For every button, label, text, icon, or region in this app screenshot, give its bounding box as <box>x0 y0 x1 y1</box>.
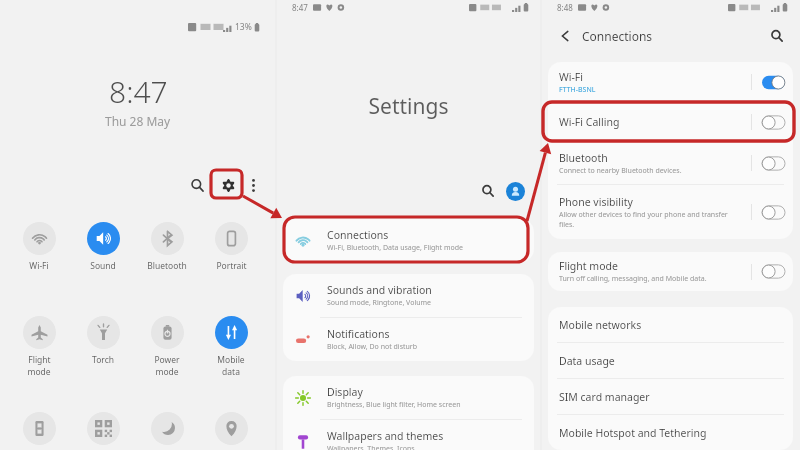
button[interactable]: Search <box>477 180 499 202</box>
staticText: Flight <box>28 354 51 366</box>
staticText: Settings <box>276 92 541 121</box>
button[interactable]: Notifications <box>283 318 534 361</box>
button[interactable]: Portrait <box>203 222 259 272</box>
staticText: Wi-Fi <box>29 260 49 272</box>
staticText: 13% <box>235 21 252 33</box>
button[interactable]: More options <box>245 174 261 196</box>
button[interactable]: Phone visibility <box>548 185 793 239</box>
button[interactable] <box>11 412 67 445</box>
staticText: Block, Allow, Do not disturb <box>327 342 418 352</box>
button[interactable]: Toggle Phone visibility <box>757 204 785 221</box>
staticText: Wi-Fi, Bluetooth, Data usage, Flight mod… <box>327 243 464 253</box>
staticText: Mobile <box>217 354 245 366</box>
staticText: Power <box>154 354 180 366</box>
button[interactable]: Mobile <box>203 316 259 378</box>
staticText: Connections <box>582 28 653 44</box>
button[interactable]: Connections <box>283 219 534 262</box>
button[interactable]: Sounds and vibration <box>283 274 534 317</box>
staticText: SIM card manager <box>559 390 650 404</box>
staticText: 8:48 <box>557 2 573 13</box>
staticText: Data usage <box>559 354 615 368</box>
button[interactable] <box>203 412 259 445</box>
button[interactable]: Wi-Fi <box>548 62 793 102</box>
button[interactable]: Flight <box>11 316 67 378</box>
button[interactable]: Wi-Fi Calling <box>548 103 793 141</box>
button[interactable]: Wallpapers and themes <box>283 420 534 450</box>
button[interactable]: Account <box>506 182 525 201</box>
button[interactable]: Torch <box>75 316 131 366</box>
button[interactable]: Flight mode <box>548 252 793 291</box>
staticText: Brightness, Blue light filter, Home scre… <box>327 400 461 410</box>
button[interactable]: Search <box>766 25 788 47</box>
button[interactable]: Toggle Wi-Fi Calling <box>757 114 785 131</box>
staticText: 8:47 <box>292 2 308 13</box>
staticText: Sound mode, Ringtone, Volume <box>327 298 432 308</box>
button[interactable]: Back <box>555 26 575 46</box>
staticText: Torch <box>92 354 114 366</box>
staticText: Sound <box>90 260 116 272</box>
staticText: Wallpapers and themes <box>327 429 444 443</box>
button[interactable]: Mobile Hotspot and Tethering <box>548 415 793 450</box>
button[interactable] <box>75 412 131 445</box>
button[interactable]: Search <box>186 174 208 196</box>
button[interactable]: Sound <box>75 222 131 272</box>
button[interactable]: Bluetooth <box>548 142 793 184</box>
staticText: Connections <box>327 228 389 242</box>
staticText: Bluetooth <box>147 260 187 272</box>
button[interactable]: Mobile networks <box>548 307 793 342</box>
staticText: mode <box>27 366 51 378</box>
staticText: Connect to nearby Bluetooth devices. <box>559 166 682 176</box>
button[interactable]: Data usage <box>548 343 793 378</box>
staticText: Mobile networks <box>559 318 642 332</box>
staticText: Wallpapers, Themes, Icons <box>327 444 415 450</box>
staticText: Notifications <box>327 327 390 341</box>
staticText: Turn off calling, messaging, and Mobile … <box>559 274 707 284</box>
button[interactable]: SIM card manager <box>548 379 793 414</box>
button[interactable]: Settings <box>213 172 243 198</box>
button[interactable]: Power <box>139 316 195 378</box>
staticText: Mobile Hotspot and Tethering <box>559 426 707 440</box>
staticText: Phone visibility <box>559 195 633 209</box>
button[interactable]: Wi-Fi <box>11 222 67 272</box>
staticText: Flight mode <box>559 259 618 273</box>
staticText: Display <box>327 385 363 399</box>
staticText: mode <box>155 366 179 378</box>
staticText: Thu 28 May <box>105 113 171 129</box>
button[interactable]: Toggle Bluetooth <box>757 155 785 172</box>
staticText: Wi-Fi <box>559 70 584 84</box>
staticText: FTTH-BSNL <box>559 85 596 95</box>
button[interactable] <box>139 412 195 445</box>
staticText: 8:47 <box>109 71 168 112</box>
staticText: Bluetooth <box>559 151 608 165</box>
staticText: Allow other devices to find your phone a… <box>559 210 728 230</box>
staticText: Portrait <box>216 260 247 272</box>
staticText: Wi-Fi Calling <box>559 115 620 129</box>
button[interactable]: Bluetooth <box>139 222 195 272</box>
staticText: Sounds and vibration <box>327 283 432 297</box>
button[interactable]: Toggle Wi-Fi <box>757 74 785 91</box>
button[interactable]: Display <box>283 376 534 419</box>
staticText: data <box>222 366 240 378</box>
button[interactable]: Toggle Flight mode <box>757 263 785 280</box>
